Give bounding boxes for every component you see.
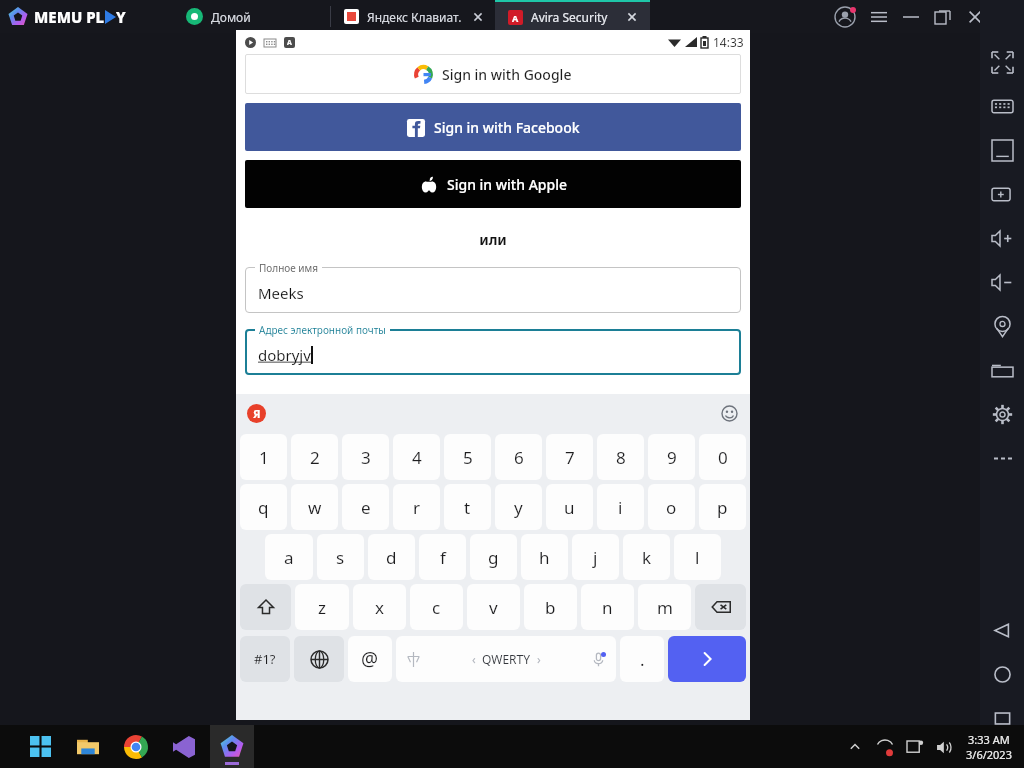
button[interactable]: r [393, 484, 440, 530]
button[interactable]: Fullscreen [980, 40, 1024, 84]
button[interactable]: Display [906, 739, 923, 756]
button[interactable]: s [317, 534, 364, 580]
button[interactable]: Sign in with Facebook [245, 103, 741, 151]
button[interactable]: Sign in with Google [245, 54, 741, 94]
button[interactable]: Keyboard [980, 84, 1024, 128]
button[interactable] [245, 329, 741, 375]
button[interactable]: Visual Studio [162, 725, 206, 768]
button[interactable]: v [467, 584, 520, 630]
button[interactable]: p [699, 484, 746, 530]
button[interactable]: n [581, 584, 634, 630]
button[interactable]: a [265, 534, 313, 580]
button[interactable]: 6 [495, 434, 542, 480]
button[interactable]: t [444, 484, 491, 530]
button[interactable]: e [342, 484, 389, 530]
button[interactable]: Minimize [902, 8, 920, 26]
button[interactable]: w [291, 484, 338, 530]
button[interactable]: q [240, 484, 287, 530]
staticText: dobryjv [258, 345, 311, 365]
staticText: 14:33 [713, 34, 744, 50]
button[interactable] [245, 267, 741, 313]
button[interactable]: File Explorer [66, 725, 110, 768]
button[interactable]: More [980, 436, 1024, 480]
button[interactable]: Домой [186, 0, 251, 33]
staticText: Sign in with Google [442, 65, 572, 84]
button[interactable]: k [623, 534, 670, 580]
button[interactable]: o [648, 484, 695, 530]
button[interactable]: h [521, 534, 568, 580]
button[interactable]: Back [980, 608, 1024, 652]
button[interactable]: Show hidden icons [848, 740, 862, 754]
button[interactable]: c [410, 584, 463, 630]
button[interactable]: u [546, 484, 593, 530]
button[interactable]: Volume up [980, 216, 1024, 260]
staticText: m [657, 596, 673, 619]
button[interactable]: Send [668, 636, 746, 682]
button[interactable]: ‹ [396, 636, 616, 682]
button[interactable]: Backspace [695, 584, 746, 630]
button[interactable]: Location [980, 304, 1024, 348]
button[interactable]: Yandex [247, 404, 266, 423]
button[interactable]: y [495, 484, 542, 530]
staticText: Яндекс Клавиат. [367, 9, 462, 25]
button[interactable]: Menu [870, 8, 888, 26]
button[interactable]: 4 [393, 434, 440, 480]
button[interactable]: x [353, 584, 406, 630]
button[interactable]: Install APK [980, 128, 1024, 172]
button[interactable]: 3 [342, 434, 389, 480]
button[interactable]: . [620, 636, 664, 682]
button[interactable]: #1? [240, 636, 290, 682]
button[interactable]: Яндекс Клавиат. [344, 0, 484, 33]
button[interactable]: Account [832, 4, 858, 30]
button[interactable]: m [638, 584, 691, 630]
staticText: g [488, 546, 499, 569]
button[interactable]: i [597, 484, 644, 530]
button[interactable]: Close tab [472, 11, 484, 23]
button[interactable]: 9 [648, 434, 695, 480]
button[interactable]: j [572, 534, 619, 580]
button[interactable]: l [674, 534, 721, 580]
staticText: e [361, 496, 371, 519]
button[interactable]: Sign in with Apple [245, 160, 741, 208]
staticText: d [386, 546, 397, 569]
button[interactable]: 0 [699, 434, 746, 480]
button[interactable]: @ [348, 636, 392, 682]
button[interactable]: Close [966, 8, 984, 26]
button[interactable]: Start [18, 725, 62, 768]
button[interactable]: d [368, 534, 415, 580]
button[interactable]: Chrome [114, 725, 158, 768]
button[interactable]: MEmu Play [210, 725, 254, 768]
button[interactable]: 5 [444, 434, 491, 480]
button[interactable]: Volume down [980, 260, 1024, 304]
button[interactable]: 8 [597, 434, 644, 480]
staticText: @ [361, 646, 379, 672]
button[interactable]: 3:33 AM [966, 732, 1012, 762]
button[interactable]: Network [876, 738, 894, 756]
button[interactable]: b [524, 584, 577, 630]
button[interactable]: Multi window [980, 172, 1024, 216]
button[interactable]: Shift [240, 584, 291, 630]
button[interactable]: Maximize [934, 8, 952, 26]
button[interactable]: A [495, 0, 650, 33]
button[interactable]: Home [980, 652, 1024, 696]
button[interactable]: z [295, 584, 349, 630]
button[interactable]: g [470, 534, 517, 580]
button[interactable]: 7 [546, 434, 593, 480]
button[interactable]: Recents [980, 696, 1024, 740]
button[interactable]: 2 [291, 434, 338, 480]
staticText: 3 [361, 446, 371, 469]
button[interactable]: Close tab [626, 11, 638, 23]
button[interactable]: Volume [935, 739, 952, 756]
button[interactable]: Settings [980, 392, 1024, 436]
staticText: l [695, 546, 700, 569]
button[interactable]: Emoji [721, 405, 738, 422]
staticText: k [642, 546, 652, 569]
button[interactable]: f [419, 534, 466, 580]
staticText: w [308, 496, 322, 519]
staticText: s [336, 546, 345, 569]
button[interactable]: 1 [240, 434, 287, 480]
staticText: q [258, 496, 269, 519]
button[interactable]: Files [980, 348, 1024, 392]
button[interactable]: Change language [294, 636, 344, 682]
